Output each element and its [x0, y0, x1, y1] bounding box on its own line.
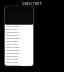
button[interactable]: Liam Frost	[5, 57, 34, 60]
staticText: Carlos Diaz	[6, 30, 19, 33]
staticText: Aaron Miller	[6, 24, 20, 27]
button[interactable]: Dana Patel	[5, 33, 34, 36]
staticText: Kara Stone	[6, 54, 19, 57]
staticText: Fiona Hale	[6, 39, 19, 42]
staticText: Grace Kim	[6, 42, 18, 45]
button[interactable]: Jonah Reed	[5, 51, 34, 54]
button[interactable]: Carlos Diaz	[5, 30, 34, 33]
staticText: Dana Patel	[6, 33, 19, 36]
button[interactable]: Irene Vance	[5, 48, 34, 51]
button[interactable]: Open profile header	[5, 6, 34, 24]
button[interactable]: Aaron Miller	[5, 24, 34, 27]
button[interactable]: Mia Novak	[5, 60, 34, 63]
staticText: Mia Novak	[6, 60, 19, 63]
staticText: Bella Cruz	[6, 27, 18, 30]
staticText: Irene Vance	[6, 48, 20, 51]
button[interactable]: Grace Kim	[5, 42, 34, 45]
button[interactable]: Bella Cruz	[5, 27, 34, 30]
button[interactable]: Fiona Hale	[5, 39, 34, 42]
staticText: DIRECTORY	[22, 2, 42, 6]
button[interactable]: Noah Quinn	[5, 63, 34, 66]
staticText: Liam Frost	[6, 57, 18, 60]
button[interactable]: Evan Brooks	[5, 36, 34, 39]
staticText: Jonah Reed	[6, 51, 19, 54]
button[interactable]: Henry Lowe	[5, 45, 34, 48]
staticText: Noah Quinn	[6, 63, 20, 66]
staticText: Henry Lowe	[6, 45, 20, 48]
staticText: Evan Brooks	[6, 36, 21, 39]
button[interactable]: Kara Stone	[5, 54, 34, 57]
